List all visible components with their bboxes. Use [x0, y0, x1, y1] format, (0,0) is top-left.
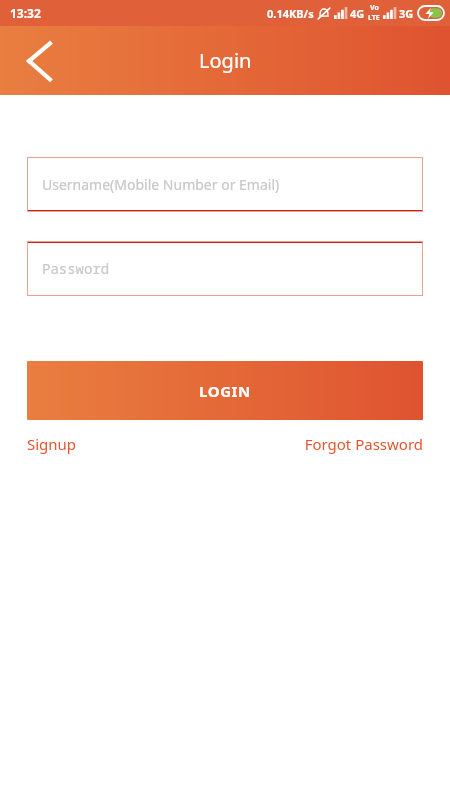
- staticText: Username(Mobile Number or Email): [42, 175, 280, 194]
- staticText: 3G: [399, 6, 414, 21]
- button[interactable]: LOGIN: [27, 361, 423, 420]
- button[interactable]: Back: [18, 40, 60, 82]
- staticText: LTE: [368, 13, 380, 23]
- staticText: Signup: [27, 434, 77, 454]
- staticText: Vo: [370, 3, 379, 13]
- button[interactable]: Signup: [27, 434, 77, 454]
- button[interactable]: Password: [27, 241, 423, 296]
- staticText: 0.14KB/s: [267, 6, 314, 21]
- staticText: LOGIN: [199, 381, 251, 401]
- staticText: 13:32: [10, 5, 41, 21]
- staticText: Login: [199, 47, 252, 74]
- staticText: 4G: [350, 6, 365, 21]
- button[interactable]: Forgot Password: [304, 434, 423, 454]
- staticText: Forgot Password: [304, 434, 423, 454]
- staticText: Password: [42, 259, 110, 278]
- button[interactable]: Username(Mobile Number or Email): [27, 157, 423, 212]
